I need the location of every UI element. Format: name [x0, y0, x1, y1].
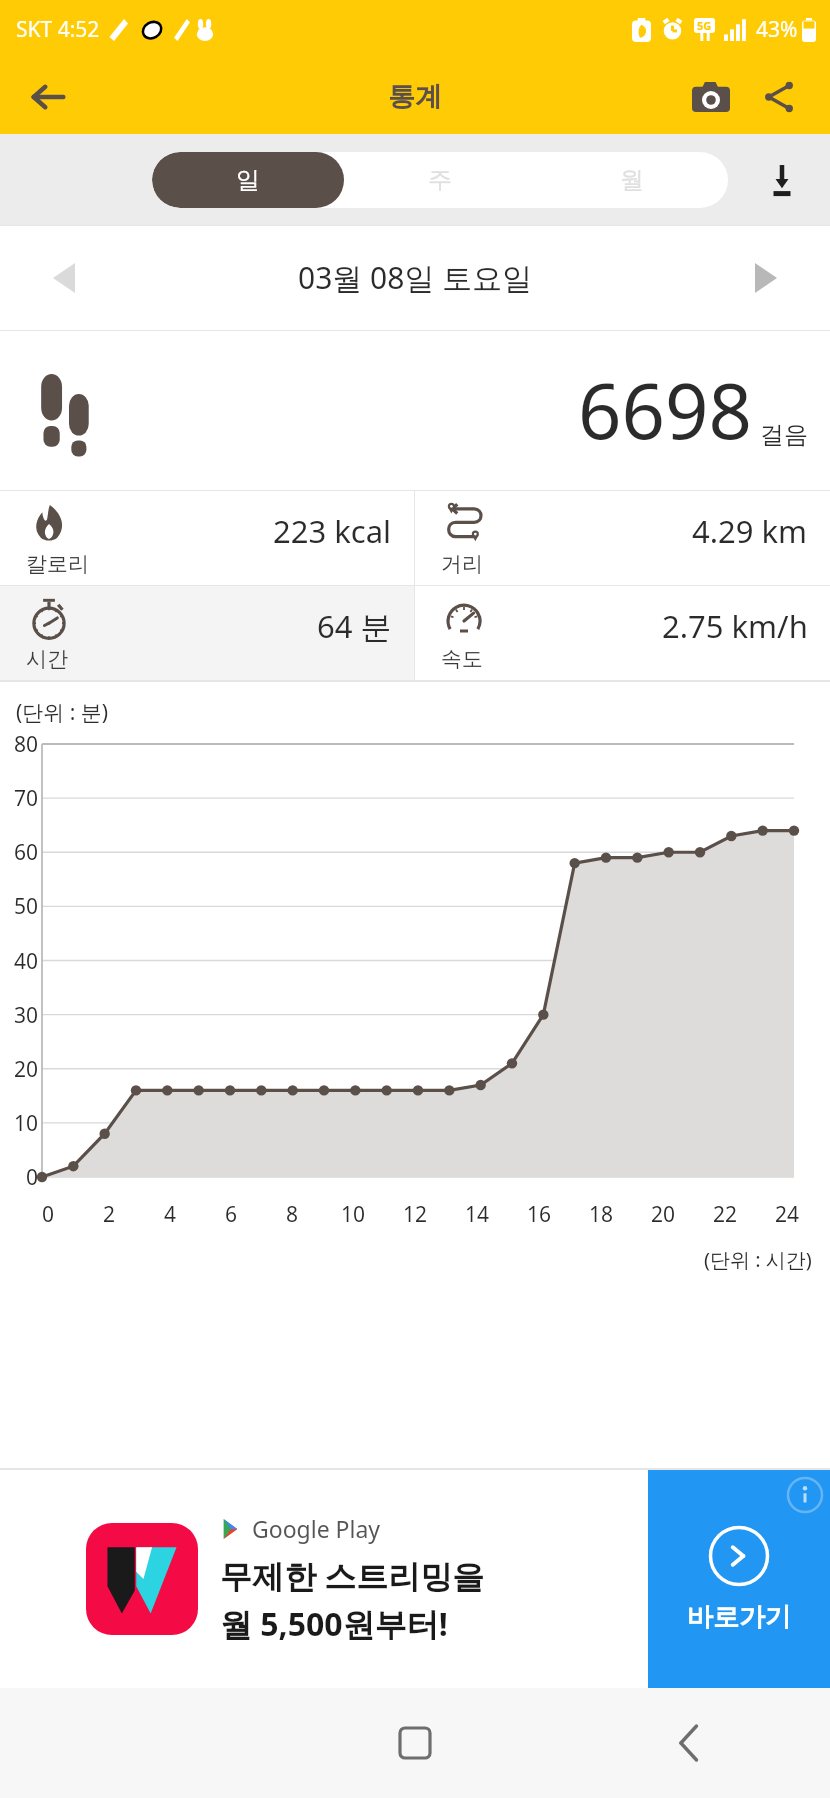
staticText: 통계: [388, 80, 442, 114]
button[interactable]: 일: [152, 152, 344, 208]
button[interactable]: 주: [344, 152, 536, 208]
button[interactable]: Back: [658, 1711, 722, 1775]
button[interactable]: Back: [22, 71, 74, 123]
staticText: 시간: [26, 646, 68, 672]
staticText: 5G: [697, 18, 712, 33]
staticText: 6: [225, 1200, 238, 1229]
staticText: 10: [341, 1200, 366, 1229]
staticText: 18: [589, 1200, 614, 1229]
staticText: 24: [775, 1200, 800, 1229]
staticText: 50: [4, 892, 38, 921]
staticText: 무제한 스트리밍을: [220, 1554, 485, 1598]
button[interactable]: Camera: [684, 70, 738, 124]
button[interactable]: 월: [536, 152, 728, 208]
staticText: 0: [4, 1163, 38, 1192]
staticText: 22: [713, 1200, 738, 1229]
staticText: 바로가기: [687, 1601, 791, 1634]
button[interactable]: Next day: [738, 250, 794, 306]
staticText: 속도: [441, 646, 483, 672]
staticText: 월: [620, 165, 644, 195]
staticText: 월 5,500원부터!: [220, 1602, 448, 1646]
button[interactable]: Home: [383, 1711, 447, 1775]
button[interactable]: 거리: [415, 491, 830, 585]
staticText: 일: [236, 165, 260, 195]
button[interactable]: Download: [754, 152, 810, 208]
button[interactable]: Google Play: [0, 1470, 830, 1688]
button[interactable]: 바로가기: [648, 1470, 830, 1688]
staticText: (단위 : 시간): [704, 1246, 812, 1273]
staticText: 2: [103, 1200, 116, 1229]
staticText: SKT 4:52: [16, 15, 100, 44]
staticText: Google Play: [252, 1513, 381, 1544]
staticText: 0: [42, 1200, 55, 1229]
staticText: 43%: [756, 15, 798, 44]
staticText: 12: [403, 1200, 428, 1229]
button[interactable]: Previous day: [36, 250, 92, 306]
staticText: 64 분: [317, 605, 392, 647]
staticText: 4.29 km: [692, 510, 808, 552]
staticText: 223 kcal: [273, 510, 392, 552]
button[interactable]: Share: [752, 70, 806, 124]
staticText: 16: [527, 1200, 552, 1229]
staticText: (단위 : 분): [16, 698, 109, 727]
staticText: 거리: [441, 551, 483, 577]
staticText: 2.75 km/h: [662, 605, 808, 647]
staticText: 8: [286, 1200, 299, 1229]
staticText: 20: [4, 1055, 38, 1084]
staticText: 30: [4, 1001, 38, 1030]
button[interactable]: 시간: [0, 586, 414, 680]
staticText: 20: [651, 1200, 676, 1229]
staticText: 80: [4, 730, 38, 759]
staticText: 6698: [578, 358, 752, 462]
staticText: 칼로리: [26, 551, 89, 577]
staticText: 03월 08일 토요일: [298, 257, 533, 298]
other: Ad info: [788, 1478, 822, 1512]
staticText: 4: [164, 1200, 177, 1229]
staticText: 60: [4, 838, 38, 867]
staticText: 14: [465, 1200, 490, 1229]
button[interactable]: 속도: [415, 586, 830, 680]
staticText: 70: [4, 784, 38, 813]
staticText: 40: [4, 947, 38, 976]
staticText: 주: [428, 165, 452, 195]
staticText: 걸음: [760, 420, 808, 450]
staticText: 10: [4, 1109, 38, 1138]
button[interactable]: 칼로리: [0, 491, 414, 585]
